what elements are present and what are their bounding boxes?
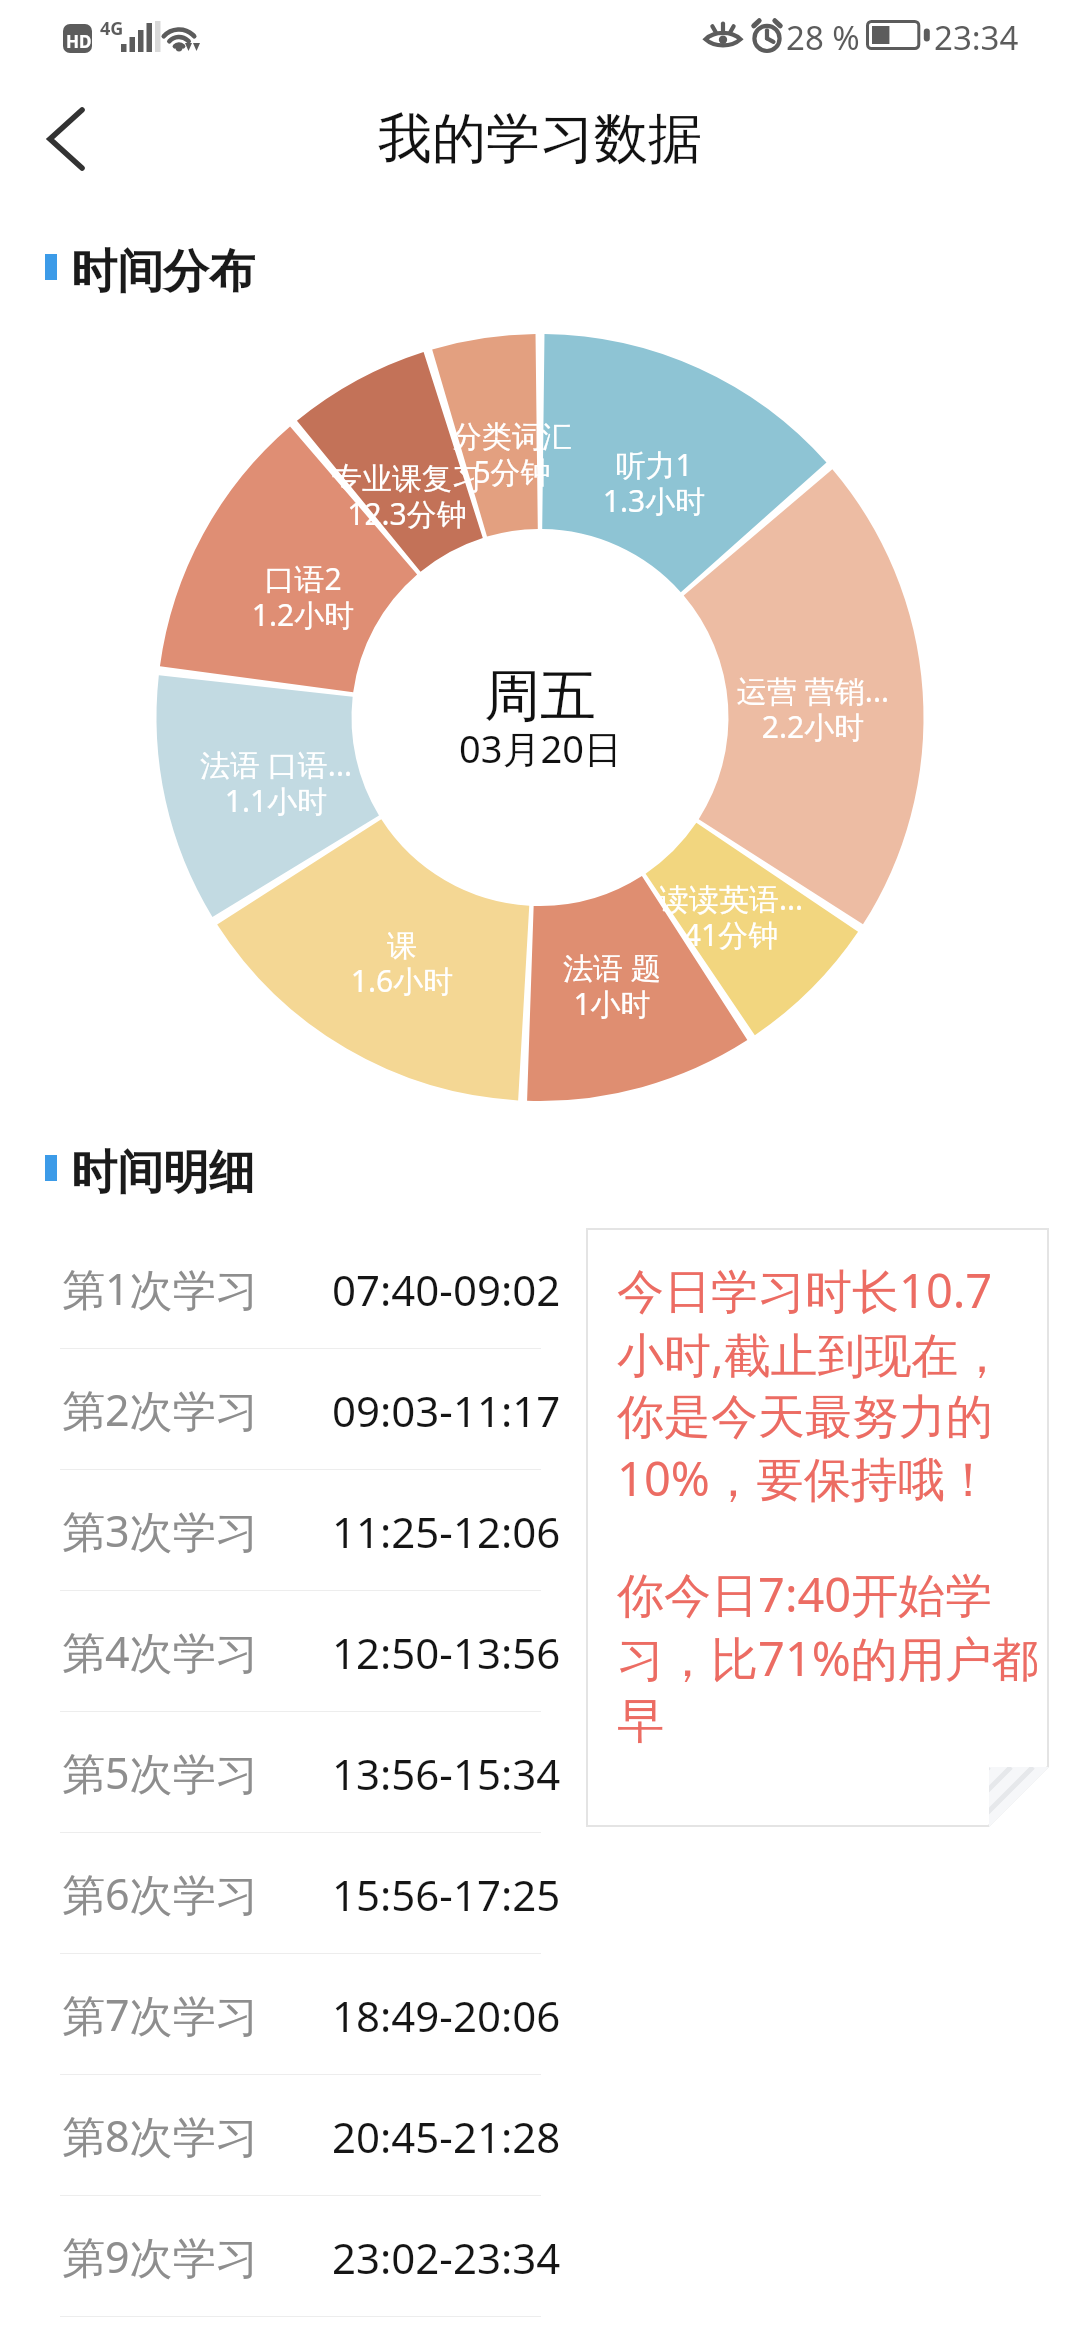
staticText: 28 % (786, 15, 860, 60)
staticText: 4G (100, 16, 124, 41)
staticText: 第6次学习 (62, 1864, 259, 1923)
staticText: 23:34 (934, 15, 1019, 60)
staticText: 课 1.6小时 (202, 927, 602, 1001)
staticText: 听力1 1.3小时 (454, 444, 854, 521)
staticText: 15:56-17:25 (332, 1866, 561, 1923)
staticText: 分类词汇 5分钟 (312, 418, 712, 492)
button[interactable]: Back (10, 84, 120, 194)
staticText: 第9次学习 (62, 2227, 259, 2286)
staticText: 时间明细 (71, 1144, 255, 1202)
staticText: 第8次学习 (62, 2106, 259, 2165)
staticText: 你今日7:40开始学 习，比71%的用户都 早 (617, 1562, 1039, 1751)
staticText: 12:50-13:56 (332, 1624, 561, 1681)
staticText: 读读英语... 41分钟 (531, 878, 931, 955)
staticText: 11:25-12:06 (332, 1503, 561, 1560)
staticText: 专业课复习 12.3分钟 (207, 460, 607, 534)
button[interactable]: 第3次学习 (0, 1470, 1080, 1591)
staticText: 时间分布 (71, 243, 255, 301)
staticText: 23:02-23:34 (332, 2229, 561, 2286)
button[interactable]: 第9次学习 (0, 2196, 1080, 2317)
button[interactable]: 第1次学习 (0, 1228, 1080, 1349)
button[interactable]: 第5次学习 (0, 1712, 1080, 1833)
staticText: 03月20日 (459, 722, 622, 774)
staticText: 09:03-11:17 (332, 1382, 561, 1439)
staticText: 07:40-09:02 (332, 1261, 561, 1318)
staticText: 运营 营销... 2.2小时 (613, 670, 1013, 747)
button[interactable]: 第6次学习 (0, 1833, 1080, 1954)
button[interactable]: 第8次学习 (0, 2075, 1080, 2196)
staticText: 第7次学习 (62, 1985, 259, 2044)
staticText: 口语2 1.2小时 (103, 558, 503, 635)
staticText: 第4次学习 (62, 1622, 259, 1681)
button[interactable]: 第4次学习 (0, 1591, 1080, 1712)
staticText: 我的学习数据 (378, 105, 702, 173)
staticText: 周五 (484, 661, 596, 732)
button[interactable]: 第7次学习 (0, 1954, 1080, 2075)
staticText: 第1次学习 (62, 1259, 259, 1318)
staticText: 法语 口语... 1.1小时 (76, 744, 476, 821)
staticText: 今日学习时长10.7 小时,截止到现在， 你是今天最努力的 10%，要保持哦！ (617, 1258, 1006, 1510)
staticText: 法语 题 1小时 (412, 947, 812, 1024)
staticText: HD (66, 30, 92, 53)
staticText: 20:45-21:28 (332, 2108, 561, 2165)
staticText: 13:56-15:34 (332, 1745, 561, 1802)
staticText: 第2次学习 (62, 1380, 259, 1439)
staticText: 第3次学习 (62, 1501, 259, 1560)
button[interactable]: 第2次学习 (0, 1349, 1080, 1470)
staticText: 第5次学习 (62, 1743, 259, 1802)
staticText: 18:49-20:06 (332, 1987, 561, 2044)
